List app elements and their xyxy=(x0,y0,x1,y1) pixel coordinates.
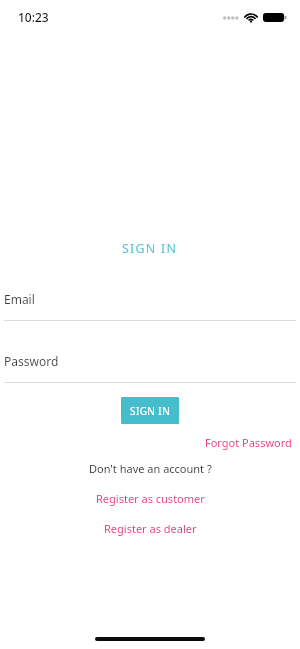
staticText: Password xyxy=(4,353,59,369)
staticText: Register as customer xyxy=(96,491,205,506)
button[interactable]: Register as dealer xyxy=(100,519,201,538)
button[interactable]: Password xyxy=(0,348,300,374)
staticText: Don't have an account ? xyxy=(89,461,212,476)
staticText: Register as dealer xyxy=(104,521,197,536)
staticText: SIGN IN xyxy=(122,240,178,257)
button[interactable]: SIGN IN xyxy=(121,397,179,424)
button[interactable]: Forgot Password xyxy=(203,433,294,452)
staticText: Email xyxy=(4,291,35,307)
staticText: Forgot Password xyxy=(205,435,292,450)
button[interactable]: Email xyxy=(0,286,300,312)
staticText: 10:23 xyxy=(18,9,49,25)
button[interactable]: Register as customer xyxy=(92,489,209,508)
staticText: SIGN IN xyxy=(130,404,171,418)
